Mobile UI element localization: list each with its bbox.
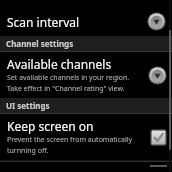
other: Open list	[148, 66, 167, 85]
other: Checked	[150, 129, 167, 146]
staticText: turnning off.	[7, 146, 49, 156]
staticText: Available channels	[7, 56, 112, 72]
other: Open list	[147, 12, 166, 31]
staticText: Scan interval	[7, 14, 147, 30]
staticText: Keep screen on	[7, 118, 94, 134]
staticText: Take effect in "Channel rating" view.	[7, 84, 125, 94]
staticText: Prevent the screen from automatically	[7, 135, 133, 145]
staticText: Channel settings	[6, 38, 74, 49]
staticText: UI settings	[6, 100, 50, 111]
button[interactable]: Keep screen on	[0, 114, 172, 160]
button[interactable]: Open network indicator	[0, 162, 172, 172]
button[interactable]: Available channels	[0, 52, 172, 98]
staticText: Set available channels in your region.	[7, 73, 130, 83]
button[interactable]: Scan interval	[0, 7, 172, 36]
